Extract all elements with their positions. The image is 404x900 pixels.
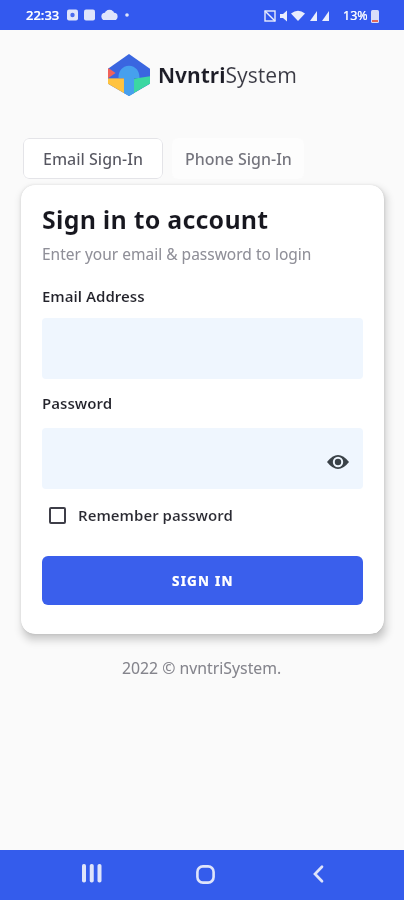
staticText: Password [42,393,113,413]
button[interactable] [189,858,221,890]
button[interactable]: Email Sign-In [23,138,163,179]
button[interactable] [42,428,363,489]
staticText: 13% [343,7,368,24]
staticText: Phone Sign-In [185,148,292,170]
staticText: Email Address [42,286,145,306]
button[interactable] [302,858,334,890]
button[interactable]: Remember password [49,505,233,525]
staticText: Enter your email & password to login [42,243,312,264]
staticText: 2022 © nvntriSystem. [122,657,282,679]
staticText: 22:33 [26,6,60,24]
staticText: SIGN IN [172,572,234,590]
staticText: Sign in to account [42,202,269,236]
button[interactable]: SIGN IN [42,556,363,605]
staticText: Remember password [78,505,233,525]
staticText: NvntriSystem [158,61,297,90]
staticText: Email Sign-In [43,148,143,170]
button[interactable] [76,857,108,889]
button[interactable]: Phone Sign-In [172,138,304,179]
